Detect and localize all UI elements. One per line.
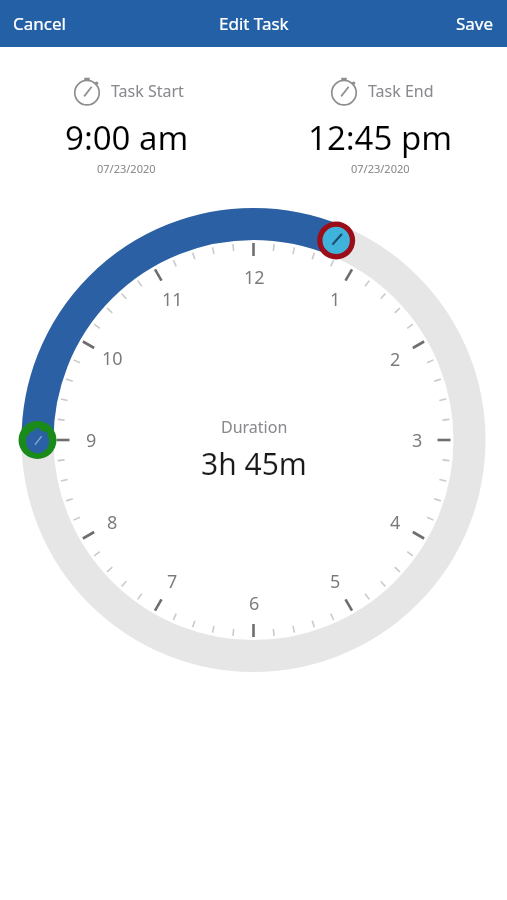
staticText: 12	[244, 265, 265, 289]
staticText: 9	[86, 428, 97, 452]
staticText: 3h 45m	[201, 443, 307, 484]
staticText: 4	[390, 510, 401, 534]
other: Task Start	[70, 74, 104, 108]
staticText: Task Start	[111, 80, 184, 102]
staticText: 10	[102, 346, 123, 370]
staticText: 8	[107, 510, 118, 534]
button[interactable]: Task Start	[0, 74, 253, 176]
staticText: 7	[167, 569, 178, 593]
staticText: Cancel	[13, 12, 66, 35]
staticText: 1	[330, 287, 341, 311]
button[interactable]: Save	[443, 0, 507, 47]
staticText: 2	[390, 347, 401, 371]
staticText: 07/23/2020	[97, 161, 156, 176]
staticText: 07/23/2020	[351, 161, 410, 176]
staticText: 11	[162, 287, 183, 311]
button[interactable]: Task End	[253, 74, 507, 176]
staticText: 3	[412, 428, 423, 452]
other: Task End	[327, 74, 361, 108]
staticText: 12:45 pm	[308, 115, 453, 160]
button[interactable]: Cancel	[0, 0, 79, 47]
staticText: 9:00 am	[65, 115, 189, 160]
staticText: 5	[330, 569, 341, 593]
staticText: 6	[249, 591, 260, 615]
staticText: Duration	[221, 416, 288, 438]
staticText: Task End	[368, 80, 434, 102]
staticText: Save	[456, 12, 494, 35]
staticText: Edit Task	[219, 12, 289, 35]
